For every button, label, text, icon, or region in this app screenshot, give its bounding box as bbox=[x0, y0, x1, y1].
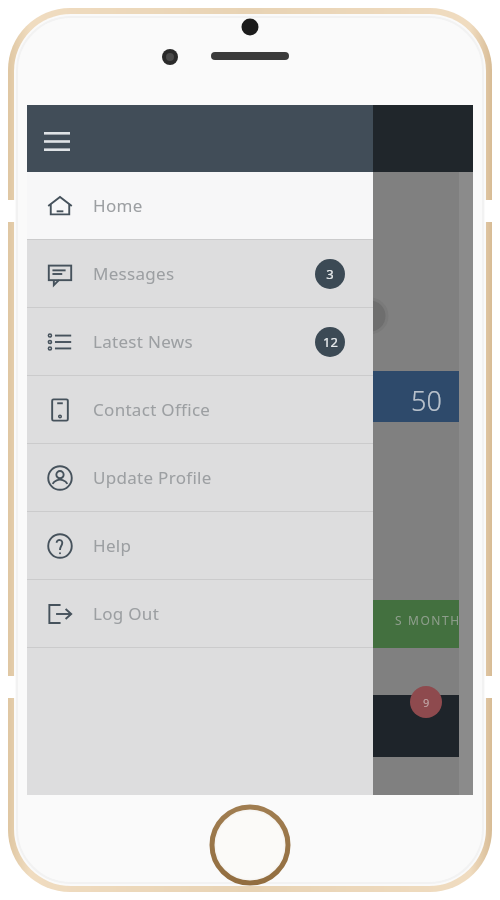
button[interactable]: Latest News bbox=[27, 308, 373, 375]
staticText: 50 bbox=[411, 382, 442, 419]
staticText: Update Profile bbox=[93, 466, 212, 489]
button[interactable]: Help bbox=[27, 512, 373, 579]
staticText: Latest News bbox=[93, 330, 193, 353]
staticText: Home bbox=[93, 194, 143, 217]
button[interactable]: Update Profile bbox=[27, 444, 373, 511]
staticText: Messages bbox=[93, 262, 175, 285]
staticText: Help bbox=[93, 534, 132, 557]
button[interactable]: Close navigation menu bbox=[35, 119, 79, 163]
staticText: Contact Office bbox=[93, 398, 211, 421]
staticText: 12 bbox=[323, 333, 338, 351]
button[interactable]: Contact Office bbox=[27, 376, 373, 443]
staticText: Log Out bbox=[93, 602, 160, 625]
button[interactable]: Log Out bbox=[27, 580, 373, 647]
button[interactable]: Messages bbox=[27, 240, 373, 307]
staticText: 3 bbox=[326, 265, 334, 283]
button[interactable]: Home bbox=[27, 172, 373, 239]
staticText: 9 bbox=[423, 695, 430, 710]
staticText: S MONTH bbox=[395, 612, 461, 628]
